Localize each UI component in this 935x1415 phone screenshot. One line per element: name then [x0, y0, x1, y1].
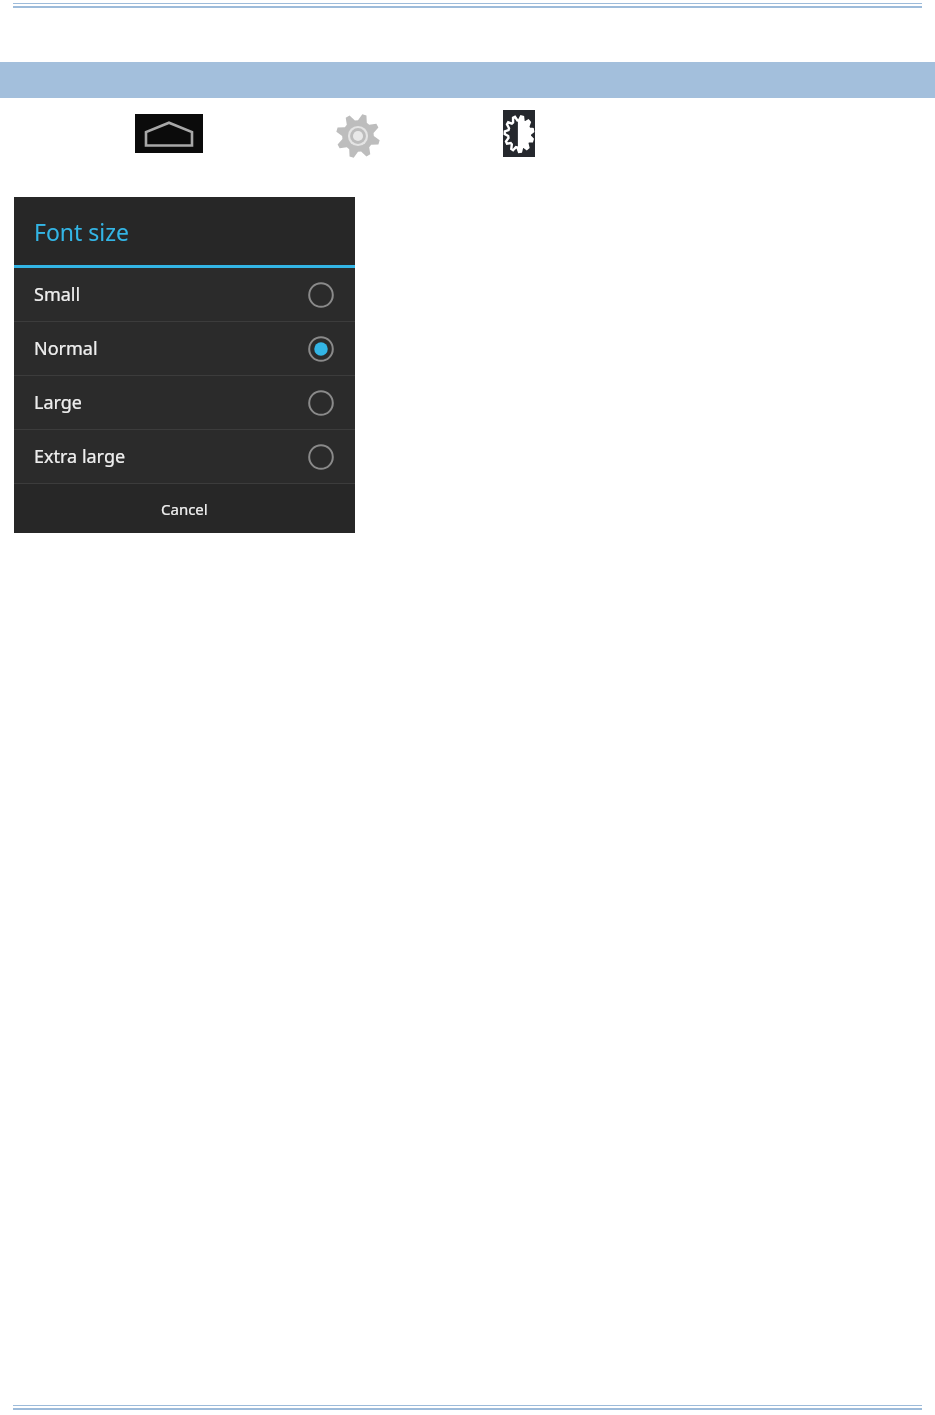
button[interactable]: Brightness — [503, 110, 535, 157]
button[interactable]: Extra large — [14, 430, 355, 483]
staticText: Extra large — [34, 444, 126, 469]
button[interactable]: Home — [135, 114, 203, 153]
button[interactable]: Normal — [14, 322, 355, 375]
button[interactable]: Cancel — [14, 484, 355, 533]
staticText: Cancel — [161, 499, 208, 519]
staticText: Large — [34, 390, 83, 415]
staticText: Font size — [34, 216, 130, 247]
button[interactable]: Large — [14, 376, 355, 429]
button[interactable]: Settings — [332, 110, 384, 162]
staticText: Normal — [34, 336, 98, 361]
button[interactable]: Small — [14, 268, 355, 321]
staticText: Small — [34, 282, 81, 307]
